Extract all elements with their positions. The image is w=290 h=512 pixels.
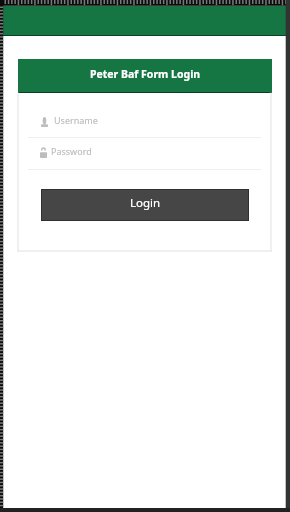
staticText: Peter Baf Form Login — [90, 67, 201, 81]
button[interactable]: Password — [28, 142, 261, 170]
staticText: Login — [130, 195, 161, 211]
button[interactable]: Username — [28, 110, 261, 138]
button[interactable]: Login — [42, 190, 248, 220]
staticText: Password — [51, 145, 92, 157]
other: Username — [41, 117, 48, 127]
other: Password — [40, 148, 47, 158]
staticText: Username — [54, 114, 98, 126]
